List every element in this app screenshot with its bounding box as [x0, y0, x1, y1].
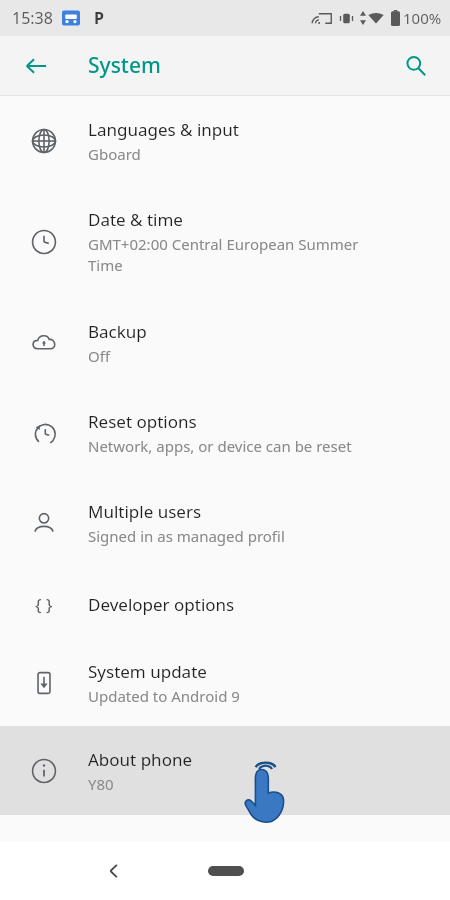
staticText: About phone: [88, 748, 193, 771]
staticText: Off: [88, 346, 111, 366]
staticText: Signed in as managed profil: [88, 526, 285, 546]
button[interactable]: Back: [12, 42, 60, 90]
staticText: 100%: [403, 8, 442, 28]
button[interactable]: Backup: [0, 298, 450, 388]
button[interactable]: System update: [0, 640, 450, 726]
button[interactable]: Multiple users: [0, 478, 450, 568]
button[interactable]: Reset options: [0, 388, 450, 478]
staticText: GMT+02:00 Central European Summer Time: [88, 234, 359, 276]
staticText: Backup: [88, 320, 147, 343]
button[interactable]: Search: [392, 42, 440, 90]
staticText: Reset options: [88, 410, 197, 433]
button[interactable]: Languages & input: [0, 96, 450, 186]
staticText: Multiple users: [88, 500, 202, 523]
staticText: System update: [88, 660, 207, 683]
staticText: Languages & input: [88, 118, 239, 141]
staticText: Developer options: [88, 593, 235, 616]
staticText: 15:38: [12, 7, 53, 29]
staticText: System: [88, 51, 161, 80]
button[interactable]: Back: [90, 847, 138, 895]
button[interactable]: Home: [194, 856, 258, 886]
staticText: Updated to Android 9: [88, 686, 240, 706]
staticText: Network, apps, or device can be reset: [88, 436, 352, 456]
staticText: P: [94, 7, 104, 29]
button[interactable]: About phone: [0, 726, 450, 815]
staticText: Gboard: [88, 144, 141, 164]
staticText: { }: [35, 593, 53, 616]
button[interactable]: { }: [0, 568, 450, 640]
button[interactable]: Date & time: [0, 186, 450, 298]
staticText: Date & time: [88, 208, 183, 231]
staticText: Y80: [88, 774, 114, 794]
